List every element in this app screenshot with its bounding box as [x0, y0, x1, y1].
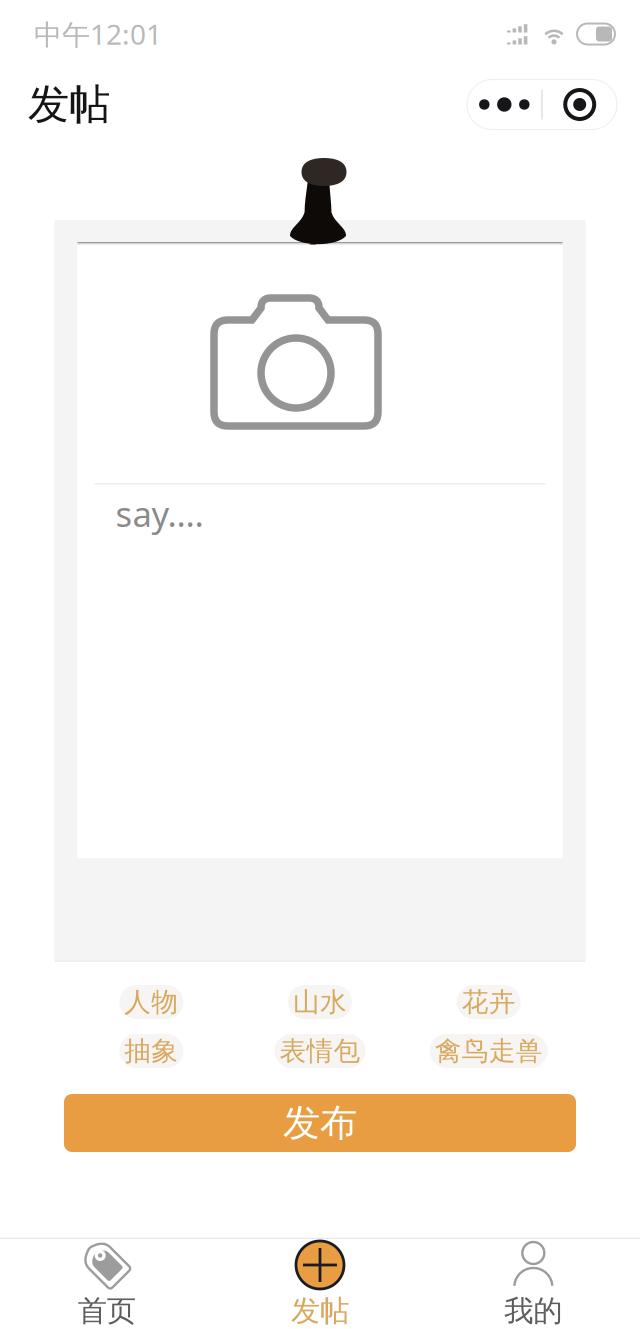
- staticText: 山水: [293, 986, 347, 1018]
- staticText: say....: [115, 490, 203, 536]
- button[interactable]: 禽鸟走兽: [404, 1034, 573, 1068]
- button[interactable]: More: [467, 79, 541, 129]
- button[interactable]: 抽象: [67, 1034, 236, 1068]
- button[interactable]: 发帖: [213, 1239, 427, 1329]
- button[interactable]: 表情包: [236, 1034, 404, 1068]
- staticText: 花卉: [462, 986, 516, 1018]
- staticText: 发帖: [291, 1293, 349, 1329]
- staticText: 抽象: [124, 1035, 178, 1067]
- staticText: 发布: [283, 1100, 357, 1146]
- button[interactable]: 我的: [427, 1239, 640, 1329]
- staticText: 首页: [78, 1293, 136, 1329]
- button[interactable]: 花卉: [404, 985, 573, 1019]
- staticText: 禽鸟走兽: [435, 1035, 543, 1067]
- button[interactable]: 人物: [67, 985, 236, 1019]
- button[interactable]: Close mini program: [543, 79, 617, 129]
- button[interactable]: 山水: [236, 985, 404, 1019]
- button[interactable]: 首页: [0, 1239, 213, 1329]
- staticText: 人物: [124, 986, 178, 1018]
- staticText: 我的: [504, 1293, 562, 1329]
- staticText: 发帖: [28, 79, 110, 130]
- staticText: 中午12:01: [34, 15, 162, 53]
- staticText: 表情包: [279, 1035, 360, 1067]
- button[interactable]: 发布: [64, 1094, 576, 1152]
